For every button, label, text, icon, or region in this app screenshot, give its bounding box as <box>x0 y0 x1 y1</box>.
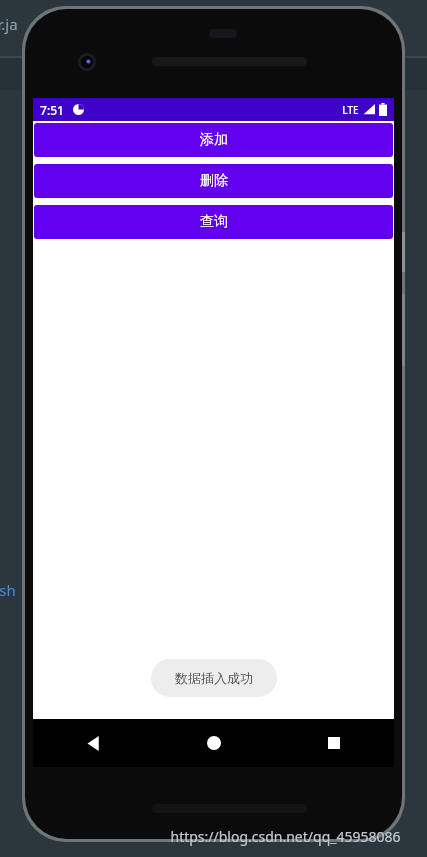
staticText: 删除 <box>200 172 228 190</box>
staticText: 添加 <box>200 131 228 149</box>
staticText: sh <box>0 580 16 600</box>
button[interactable]: Back <box>33 719 154 767</box>
staticText: 数据插入成功 <box>175 670 253 686</box>
button[interactable]: 查询 <box>34 205 393 239</box>
button[interactable]: Home <box>154 719 274 767</box>
button[interactable]: 删除 <box>34 164 393 198</box>
staticText: 查询 <box>200 213 228 231</box>
staticText: https://blog.csdn.net/qq_45958086 <box>170 827 401 846</box>
staticText: LTE <box>342 103 359 117</box>
button[interactable]: Recent apps <box>274 719 394 767</box>
staticText: 7:51 <box>40 102 64 118</box>
button[interactable]: 添加 <box>34 123 393 157</box>
staticText: r.ja <box>0 14 18 34</box>
